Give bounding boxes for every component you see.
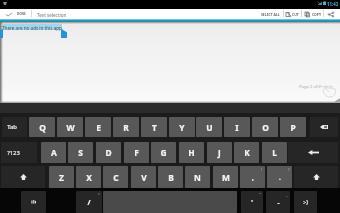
button[interactable]: O	[252, 117, 278, 137]
staticText: H	[188, 147, 195, 158]
button[interactable]: -	[266, 191, 290, 213]
staticText: /	[87, 197, 91, 207]
staticText: :-)	[303, 199, 308, 206]
staticText: R	[123, 122, 129, 133]
button[interactable]: SELECT ALL	[259, 9, 282, 19]
button[interactable]: Q	[29, 117, 55, 137]
button[interactable]: Y	[169, 117, 195, 137]
button[interactable]: X	[76, 166, 101, 188]
button[interactable]: Enter	[288, 142, 338, 163]
button[interactable]: J	[207, 142, 232, 163]
button[interactable]: B	[158, 166, 183, 188]
staticText: X	[86, 172, 92, 183]
button[interactable]: I	[224, 117, 250, 137]
button[interactable]: DONE	[2, 9, 31, 19]
staticText: A	[51, 147, 57, 158]
staticText: C	[113, 172, 119, 183]
staticText: °	[98, 192, 100, 197]
staticText: G	[160, 147, 167, 158]
button[interactable]: /	[76, 191, 102, 213]
button[interactable]: K	[234, 142, 259, 163]
staticText: N	[194, 172, 201, 183]
staticText: L	[272, 147, 277, 158]
button[interactable]: E	[85, 117, 111, 137]
button[interactable]: H	[179, 142, 204, 163]
button[interactable]: D	[96, 142, 121, 163]
button[interactable]: ,	[240, 166, 265, 188]
staticText: S	[78, 147, 83, 158]
staticText: F	[134, 147, 139, 158]
button[interactable]: F	[124, 142, 149, 163]
staticText: Tab	[7, 123, 17, 131]
staticText: COPY	[312, 12, 322, 17]
button[interactable]: Shift	[294, 166, 338, 188]
button[interactable]: .	[267, 166, 292, 188]
button[interactable]: T	[141, 117, 167, 137]
staticText: ,	[252, 173, 254, 182]
staticText: D	[105, 147, 112, 158]
staticText: K	[244, 147, 250, 158]
button[interactable]: C	[103, 166, 128, 188]
staticText: M	[222, 172, 230, 183]
staticText: DONE	[17, 12, 26, 16]
button[interactable]: N	[185, 166, 210, 188]
staticText: .	[279, 173, 281, 182]
staticText: U	[206, 122, 213, 133]
button[interactable]: P	[280, 117, 306, 137]
button[interactable]: L	[262, 142, 287, 163]
staticText: Text selection	[37, 12, 67, 18]
button[interactable]: W	[57, 117, 83, 137]
staticText: ?	[288, 167, 290, 172]
staticText: ?123	[7, 149, 20, 157]
button[interactable]: G	[151, 142, 176, 163]
button[interactable]: Shift	[1, 166, 45, 188]
staticText: CUT	[292, 12, 299, 17]
button[interactable]: M	[213, 166, 238, 188]
staticText: P	[290, 122, 296, 133]
staticText: 11:42	[327, 1, 339, 7]
staticText: '	[251, 198, 253, 207]
staticText: J	[218, 147, 221, 158]
button[interactable]: Share	[324, 9, 338, 19]
staticText: SELECT ALL	[261, 12, 280, 17]
button[interactable]: V	[131, 166, 156, 188]
button[interactable]: ?123	[1, 142, 37, 163]
button[interactable]: :-)	[294, 191, 317, 213]
button[interactable]: Voice input	[21, 191, 46, 213]
staticText: There are no ads in this app.	[2, 25, 64, 31]
staticText: Page 2 of 7	[299, 84, 321, 90]
button[interactable]: Tab	[2, 117, 27, 137]
staticText: O	[262, 122, 269, 133]
button[interactable]: Backspace	[310, 117, 338, 137]
button[interactable]: U	[196, 117, 222, 137]
staticText: -	[277, 198, 280, 207]
button[interactable]: R	[113, 117, 139, 137]
staticText: W	[66, 122, 75, 133]
button[interactable]: S	[68, 142, 93, 163]
button[interactable]: A	[41, 142, 66, 163]
staticText: I	[235, 122, 239, 133]
staticText: Q	[39, 122, 46, 133]
staticText: T	[152, 122, 157, 133]
staticText: V	[141, 172, 147, 183]
button[interactable]: '	[241, 191, 263, 213]
staticText: B	[168, 172, 174, 183]
staticText: "	[259, 192, 261, 197]
staticText: E	[96, 122, 101, 133]
button[interactable]: Z	[49, 166, 74, 188]
staticText: _	[286, 192, 288, 197]
staticText: !	[261, 167, 263, 172]
staticText: Y	[179, 122, 185, 133]
staticText: Z	[59, 172, 64, 183]
button[interactable]: CUT	[284, 9, 299, 19]
button[interactable]: COPY	[303, 9, 322, 19]
